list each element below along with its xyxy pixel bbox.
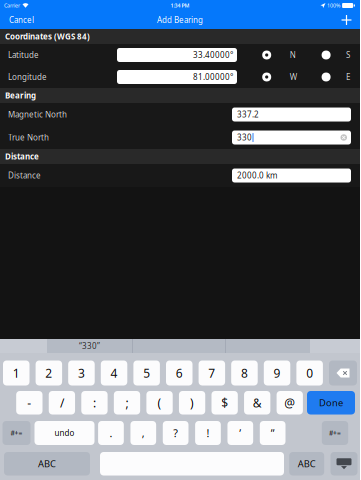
staticText: 2000.0 km [237,170,277,181]
staticText: 8 [241,365,248,381]
staticText: @ [284,395,295,411]
staticText: - [27,395,31,411]
staticText: & [253,395,262,411]
staticText: Magnetic North [8,109,67,120]
staticText: 4 [111,365,118,381]
staticText: N [290,50,296,60]
button[interactable]: #+= [2,421,30,445]
staticText: Done [319,397,343,409]
button[interactable]: 2 [36,360,62,385]
button[interactable]: W [237,66,322,88]
button[interactable]: . [98,421,124,445]
staticText: Bearing [5,90,36,101]
button[interactable]: E [322,66,359,88]
staticText: Latitude [8,50,39,60]
staticText: ABC [38,458,56,470]
button[interactable]: 4 [101,360,127,385]
button[interactable]: 7 [199,360,225,385]
button[interactable] [100,452,284,475]
staticText: True North [8,132,49,143]
button[interactable]: Add [333,11,360,29]
button[interactable]: , [130,421,156,445]
staticText: Cancel [9,15,34,25]
staticText: S [346,50,350,60]
staticText: Coordinates (WGS 84) [5,31,90,42]
staticText: 330 [237,132,252,143]
button[interactable]: ! [195,421,221,445]
button[interactable]: : [81,391,108,414]
staticText: #+= [329,429,341,437]
staticText: ! [206,426,209,440]
button[interactable]: N [237,44,322,66]
button[interactable]: ; [114,391,140,414]
staticText: Carrier [4,2,20,9]
button[interactable]: $ [211,391,238,414]
button[interactable]: 0 [296,360,323,385]
staticText: ” [271,426,275,440]
staticText: ’ [239,426,241,440]
button[interactable]: #+= [322,421,348,445]
button[interactable]: - [16,391,42,414]
button[interactable]: ABC [289,452,324,475]
staticText: undo [54,428,74,438]
button[interactable]: Cancel [0,11,43,29]
staticText: Longitude [8,72,47,82]
staticText: Distance [8,170,41,181]
staticText: 7 [208,365,215,381]
staticText: 1 [13,365,20,381]
button[interactable]: ( [146,391,173,414]
staticText: ) [190,395,194,411]
staticText: / [60,395,64,411]
button[interactable]: 5 [133,360,160,385]
button[interactable]: ) [179,391,205,414]
button[interactable]: S [322,44,359,66]
staticText: 1:34 PM [170,2,189,9]
staticText: E [346,72,350,82]
staticText: “330” [79,341,100,351]
staticText: 33.40000° [193,50,233,60]
staticText: 6 [176,365,183,381]
staticText: ABC [298,458,316,470]
button[interactable]: Done [307,391,355,414]
staticText: Distance [5,151,39,162]
button[interactable]: 8 [231,360,258,385]
button[interactable]: ? [163,421,188,445]
staticText: 5 [143,365,150,381]
staticText: 9 [274,365,281,381]
staticText: Add Bearing [157,15,203,25]
button[interactable]: / [49,391,75,414]
button[interactable]: & [244,391,270,414]
button[interactable]: 6 [166,360,192,385]
button[interactable]: @ [277,391,303,414]
staticText: 2 [45,365,52,381]
button[interactable]: 1 [3,360,29,385]
staticText: ( [158,395,162,411]
button[interactable]: ” [260,421,285,445]
button[interactable]: ’ [227,421,253,445]
button[interactable]: Dismiss keyboard [330,452,357,475]
staticText: 337.2 [237,109,259,120]
button[interactable]: 9 [264,360,290,385]
staticText: ; [125,395,128,411]
staticText: 3 [78,365,85,381]
staticText: ? [173,426,178,440]
staticText: W [290,72,297,82]
staticText: , [142,426,145,440]
staticText: 0 [306,365,313,381]
button[interactable]: Delete [329,360,357,385]
staticText: . [109,426,112,440]
staticText: #+= [10,429,22,437]
staticText: 100% [327,2,340,9]
staticText: $ [221,395,228,411]
staticText: 81.00000° [193,72,233,82]
button[interactable]: 3 [68,360,95,385]
button[interactable]: ABC [4,452,90,475]
button[interactable]: undo [34,421,94,445]
staticText: : [93,395,96,411]
